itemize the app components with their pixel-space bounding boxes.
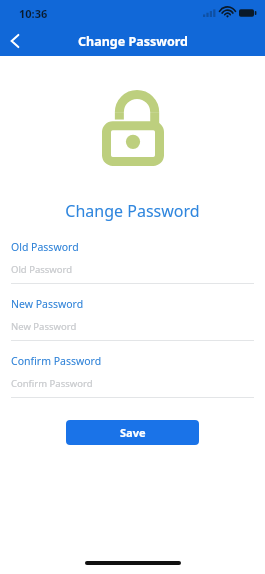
button[interactable]: Back bbox=[0, 26, 30, 56]
staticText: Save bbox=[120, 425, 146, 440]
staticText: Old Password bbox=[11, 240, 79, 254]
staticText: Change Password bbox=[0, 200, 265, 222]
staticText: New Password bbox=[11, 320, 77, 333]
staticText: Old Password bbox=[11, 263, 73, 276]
staticText: Confirm Password bbox=[11, 354, 102, 368]
staticText: 10:36 bbox=[19, 6, 48, 21]
staticText: Change Password bbox=[78, 33, 188, 50]
button[interactable]: Confirm Password bbox=[0, 354, 265, 398]
staticText: Confirm Password bbox=[11, 377, 93, 390]
button[interactable]: Old Password bbox=[0, 240, 265, 284]
button[interactable]: New Password bbox=[0, 297, 265, 341]
staticText: New Password bbox=[11, 297, 84, 311]
button[interactable]: Save bbox=[66, 420, 199, 445]
